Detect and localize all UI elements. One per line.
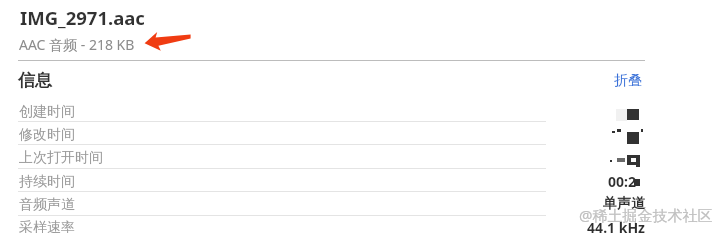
button[interactable]: 持续时间 (0, 168, 660, 190)
staticText: 单声道 (0, 195, 645, 213)
button[interactable]: 音频声道 (0, 191, 660, 213)
staticText: @稀土掘金技术社区 (579, 205, 713, 225)
staticText: 创建时间 (19, 103, 75, 121)
staticText: IMG_2971.aac (20, 5, 145, 30)
staticText: 00:2 (0, 172, 636, 191)
other: Annotation arrow (140, 28, 196, 54)
button[interactable]: 折叠 (606, 69, 650, 90)
button[interactable]: 上次打开时间 (0, 144, 660, 166)
staticText: AAC 音频 - 218 KB (19, 35, 135, 54)
staticText: 信息 (18, 70, 52, 91)
button[interactable]: 修改时间 (0, 121, 660, 143)
staticText: 上次打开时间 (19, 149, 103, 167)
staticText: 采样速率 (19, 219, 75, 233)
button[interactable]: 创建时间 (0, 98, 660, 120)
staticText: 持续时间 (19, 173, 75, 191)
staticText: 折叠 (614, 72, 642, 90)
staticText: 修改时间 (19, 126, 75, 144)
button[interactable]: 采样速率 (0, 214, 660, 233)
staticText: 44.1 kHz (0, 218, 645, 233)
staticText: 音频声道 (19, 196, 75, 214)
